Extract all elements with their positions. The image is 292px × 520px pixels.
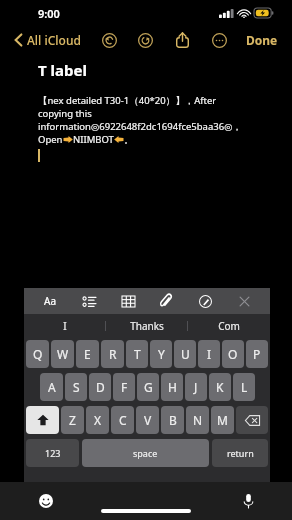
button[interactable]: Y (150, 340, 172, 368)
button[interactable]: Checklist (76, 288, 102, 314)
staticText: 9:00 (38, 6, 60, 21)
button[interactable]: H (161, 373, 183, 401)
button[interactable]: F (113, 373, 135, 401)
staticText: K (216, 379, 224, 395)
staticText: All iCloud (27, 32, 81, 48)
staticText: return (227, 447, 254, 459)
button[interactable]: J (185, 373, 207, 401)
staticText: NIIMBOT (73, 133, 114, 146)
staticText: C (119, 412, 127, 428)
button[interactable]: E (76, 340, 99, 368)
button[interactable]: W (51, 340, 74, 368)
button[interactable]: Redo (133, 28, 157, 52)
staticText: A (48, 379, 56, 395)
button[interactable]: 123 (26, 439, 79, 467)
staticText: F (121, 379, 128, 395)
staticText: Done (246, 32, 278, 48)
staticText: T (134, 346, 141, 362)
staticText: M (217, 412, 228, 428)
staticText: W (57, 346, 69, 362)
button[interactable]: Emoji (38, 493, 54, 509)
staticText: Com (218, 319, 240, 333)
staticText: V (144, 412, 152, 428)
staticText: Thanks (130, 319, 164, 333)
button[interactable]: L (233, 373, 255, 401)
staticText: H (168, 379, 177, 395)
staticText: Aa (44, 294, 56, 308)
button[interactable]: K (209, 373, 231, 401)
button[interactable]: R (101, 340, 124, 368)
staticText: J (194, 379, 198, 395)
staticText: I (63, 319, 67, 333)
button[interactable]: V (136, 406, 159, 434)
button[interactable]: T (126, 340, 148, 368)
button[interactable]: Z (61, 406, 84, 434)
staticText: copying this (38, 107, 92, 120)
button[interactable]: C (111, 406, 134, 434)
staticText: Open (38, 133, 63, 146)
staticText: S (73, 379, 80, 395)
button[interactable]: N (186, 406, 209, 434)
staticText: space (133, 447, 158, 459)
button[interactable]: S (65, 373, 87, 401)
staticText: Q (33, 346, 43, 362)
button[interactable]: Dictation (240, 493, 256, 509)
staticText: P (253, 346, 261, 362)
staticText: 123 (45, 447, 61, 459)
button[interactable]: I (24, 314, 106, 338)
button[interactable]: Shift (26, 406, 59, 434)
staticText: U (181, 346, 190, 362)
staticText: 。 (124, 134, 134, 146)
button[interactable]: Attach (153, 288, 179, 314)
staticText: I (207, 346, 212, 362)
button[interactable]: B (161, 406, 184, 434)
staticText: T label (38, 60, 87, 80)
staticText: R (109, 346, 117, 362)
button[interactable]: Table (115, 288, 141, 314)
button[interactable]: Com (188, 314, 270, 338)
staticText: Z (69, 412, 76, 428)
button[interactable]: G (137, 373, 159, 401)
button[interactable]: Close keyboard (231, 288, 257, 314)
button[interactable]: X (86, 406, 109, 434)
staticText: B (169, 412, 177, 428)
staticText: G (144, 379, 153, 395)
button[interactable]: More options (207, 28, 231, 52)
button[interactable]: Q (26, 340, 49, 368)
button[interactable]: Undo (97, 28, 121, 52)
staticText: 【nex detailed T30-1（40*20）】，After (38, 94, 217, 107)
button[interactable]: Share (170, 28, 194, 52)
staticText: D (96, 379, 105, 395)
button[interactable]: return (212, 439, 268, 467)
staticText: X (94, 412, 102, 428)
button[interactable]: P (246, 340, 268, 368)
button[interactable]: Thanks (106, 314, 188, 338)
staticText: O (228, 346, 238, 362)
button[interactable]: A (40, 373, 63, 401)
staticText: Y (158, 346, 165, 362)
button[interactable]: D (89, 373, 111, 401)
button[interactable]: U (174, 340, 196, 368)
staticText: information◎6922648f2dc1694fce5baa36◎， (38, 120, 242, 133)
button[interactable]: I (198, 340, 220, 368)
button[interactable]: Text format (37, 288, 63, 314)
button[interactable]: All iCloud (12, 30, 83, 50)
staticText: L (241, 379, 248, 395)
staticText: E (84, 346, 91, 362)
button[interactable]: Done (244, 30, 280, 50)
button[interactable]: M (211, 406, 234, 434)
button[interactable]: Markup (192, 288, 218, 314)
button[interactable]: space (82, 439, 209, 467)
button[interactable]: O (222, 340, 244, 368)
staticText: N (193, 412, 203, 428)
button[interactable]: Backspace (236, 406, 268, 434)
